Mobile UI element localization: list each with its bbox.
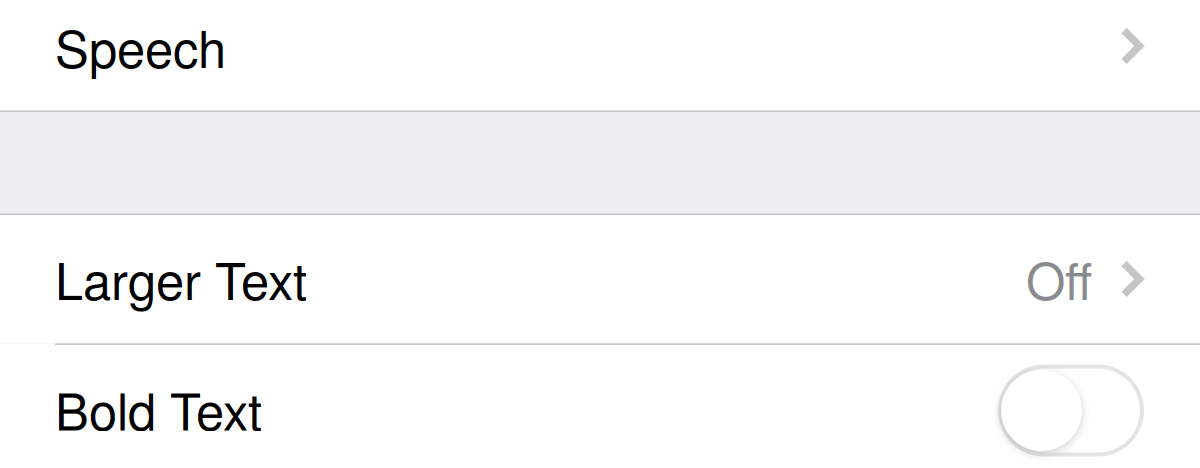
staticText: Bold Text: [55, 372, 262, 445]
button[interactable]: Speech: [0, 0, 1200, 110]
button[interactable]: Larger Text: [0, 215, 1200, 343]
staticText: Speech: [55, 10, 226, 82]
staticText: Larger Text: [55, 242, 307, 314]
button[interactable]: Bold Text: [0, 345, 1200, 468]
staticText: Off: [1026, 242, 1092, 314]
